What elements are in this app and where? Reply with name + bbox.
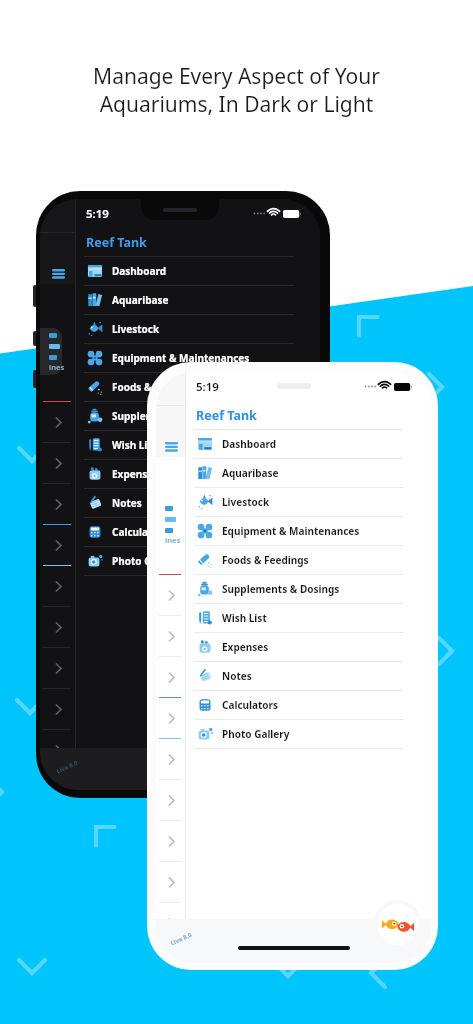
button[interactable]: Expand section xyxy=(40,689,76,729)
button[interactable]: Aquaribase xyxy=(87,286,320,314)
button[interactable]: Calculators xyxy=(87,518,320,546)
staticText: Reef Tank xyxy=(196,407,257,424)
staticText: Supplements & Dosings xyxy=(112,409,230,423)
staticText: Expenses xyxy=(112,467,159,481)
button[interactable]: Expand section xyxy=(40,607,76,647)
staticText: ines xyxy=(49,362,65,372)
staticText: Supplements & Dosings xyxy=(222,582,340,596)
button[interactable]: Expand section xyxy=(156,821,186,861)
staticText: Manage Every Aspect of Your Aquariums, I… xyxy=(0,62,473,118)
button[interactable]: Expand section xyxy=(40,648,76,688)
button[interactable]: Expand section xyxy=(156,575,186,615)
button[interactable]: Livestock xyxy=(87,315,320,343)
staticText: Foods & Feedings xyxy=(112,380,199,394)
staticText: ines xyxy=(165,535,181,545)
staticText: Notes xyxy=(112,496,142,510)
button[interactable]: Expand section xyxy=(40,566,76,606)
staticText: Aquaribase xyxy=(222,466,279,480)
button[interactable]: Supplements & Dosings xyxy=(87,402,320,430)
staticText: Dashboard xyxy=(112,264,166,278)
button[interactable]: Foods & Feedings xyxy=(197,546,431,574)
button[interactable]: Photo Gallery xyxy=(197,720,431,748)
staticText: Equipment & Maintenances xyxy=(112,351,250,365)
button[interactable]: Expand section xyxy=(40,484,76,524)
button[interactable]: Equipment & Maintenances xyxy=(87,344,320,372)
button[interactable]: Expand section xyxy=(40,730,76,770)
button[interactable]: Notes xyxy=(87,489,320,517)
staticText: Livestock xyxy=(222,495,270,509)
button[interactable]: Aquaribase xyxy=(197,459,431,487)
button[interactable]: Wish List xyxy=(87,431,320,459)
button[interactable]: Expenses xyxy=(197,633,431,661)
button[interactable]: Dashboard xyxy=(87,257,320,285)
button[interactable]: Foods & Feedings xyxy=(87,373,320,401)
button[interactable]: Notes xyxy=(197,662,431,690)
staticText: Notes xyxy=(222,669,252,683)
staticText: Dashboard xyxy=(222,437,276,451)
staticText: Calculators xyxy=(112,525,169,539)
staticText: Reef Tank xyxy=(86,234,147,251)
button[interactable]: Expenses xyxy=(87,460,320,488)
button[interactable]: Expand section xyxy=(40,402,76,442)
button[interactable]: Supplements & Dosings xyxy=(197,575,431,603)
staticText: 5:19 xyxy=(196,379,219,395)
button[interactable]: Expand section xyxy=(156,862,186,902)
button[interactable]: Livestock xyxy=(197,488,431,516)
staticText: Calculators xyxy=(222,698,279,712)
button[interactable]: Equipment & Maintenances xyxy=(197,517,431,545)
button[interactable]: Wish List xyxy=(197,604,431,632)
button[interactable]: Photo Gallery xyxy=(87,547,320,575)
staticText: Wish List xyxy=(112,438,157,452)
button[interactable]: Expand section xyxy=(40,443,76,483)
button[interactable]: Expand section xyxy=(156,780,186,820)
staticText: Live 8.0 xyxy=(55,759,80,775)
button[interactable]: Expand section xyxy=(156,657,186,697)
staticText: Photo Gallery xyxy=(222,727,290,741)
staticText: Expenses xyxy=(222,640,269,654)
button[interactable]: Calculators xyxy=(197,691,431,719)
button[interactable]: Expand section xyxy=(156,616,186,656)
button[interactable]: Add livestock xyxy=(377,904,418,945)
staticText: Foods & Feedings xyxy=(222,553,309,567)
staticText: Aquaribase xyxy=(112,293,169,307)
staticText: Wish List xyxy=(222,611,267,625)
staticText: 5:19 xyxy=(86,206,109,222)
staticText: Equipment & Maintenances xyxy=(222,524,360,538)
button[interactable]: Expand section xyxy=(156,698,186,738)
staticText: Live 8.0 xyxy=(169,931,194,947)
staticText: Livestock xyxy=(112,322,160,336)
button[interactable]: Expand section xyxy=(40,525,76,565)
staticText: Photo Gallery xyxy=(112,554,180,568)
button[interactable]: Dashboard xyxy=(197,430,431,458)
button[interactable]: Expand section xyxy=(156,739,186,779)
button[interactable]: Expand section xyxy=(156,903,186,943)
